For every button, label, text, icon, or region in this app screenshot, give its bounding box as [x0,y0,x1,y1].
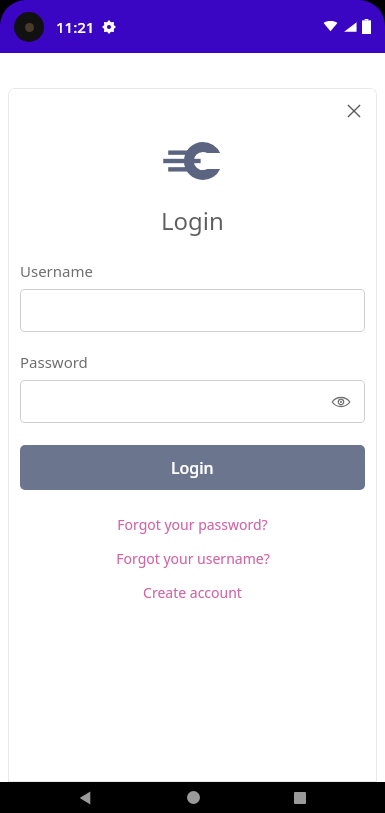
staticText: Username [20,261,93,281]
staticText: Password [20,352,88,372]
button[interactable]: Login [20,445,365,490]
staticText: 11:21 [56,17,95,37]
button[interactable] [20,289,365,332]
button[interactable]: Forgot your password? [20,512,365,537]
staticText: Forgot your username? [116,549,270,568]
button[interactable]: Forgot your username? [20,546,365,571]
button[interactable]: Show password [329,390,353,414]
staticText: Login [161,204,224,237]
button[interactable]: Close [337,94,371,128]
staticText: Forgot your password? [117,515,268,534]
staticText: Login [171,457,214,479]
button[interactable]: Create account [20,580,365,605]
button[interactable]: Recents [278,782,322,813]
button[interactable]: Back [63,782,107,813]
button[interactable]: Show password [20,380,365,423]
button[interactable]: Home [171,782,215,813]
staticText: Create account [143,583,242,602]
